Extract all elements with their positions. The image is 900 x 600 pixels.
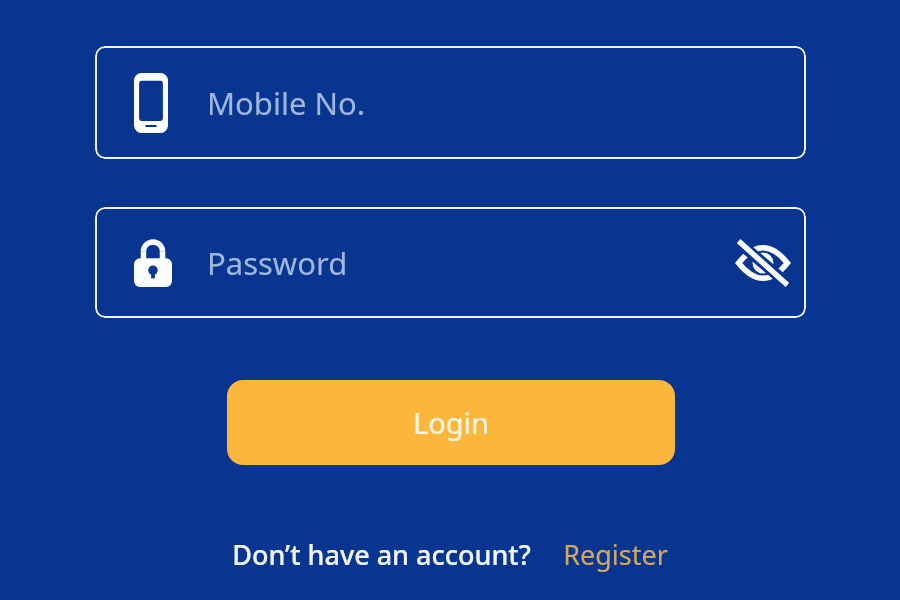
- button[interactable]: Mobile No.: [95, 46, 806, 159]
- button[interactable]: Register: [563, 536, 668, 573]
- button[interactable]: Hide password: [730, 230, 796, 296]
- button[interactable]: Login: [227, 380, 675, 465]
- staticText: Mobile No.: [207, 82, 366, 124]
- button[interactable]: Password: [95, 207, 806, 318]
- staticText: Password: [207, 242, 348, 284]
- button[interactable]: Don’t have an account?: [232, 536, 531, 573]
- staticText: Login: [413, 403, 489, 442]
